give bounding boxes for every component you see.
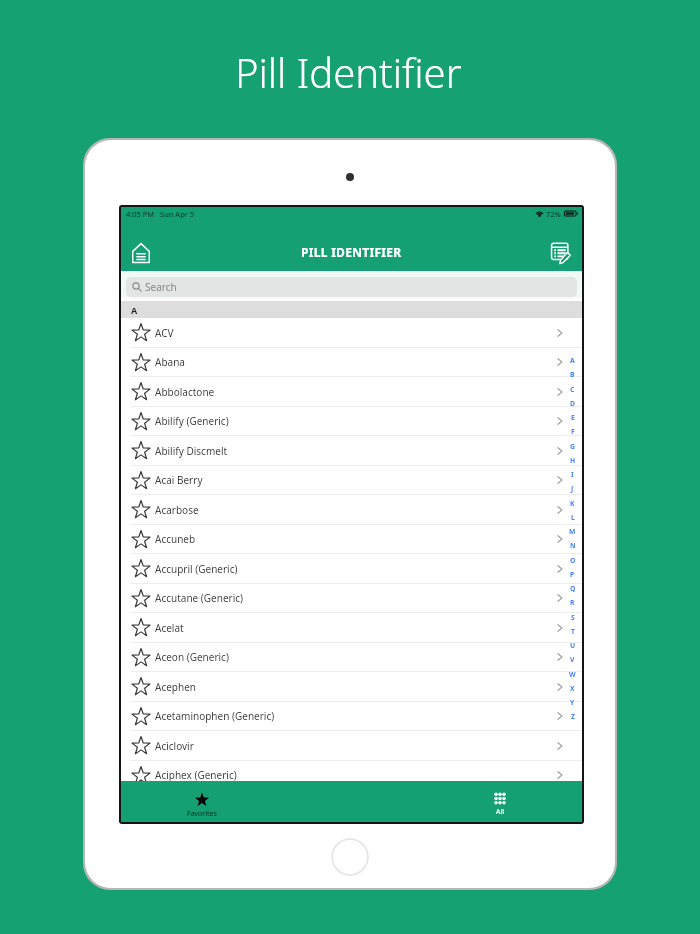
staticText: Acephen <box>155 680 196 694</box>
staticText: R <box>570 598 575 607</box>
staticText: T <box>571 627 575 636</box>
button[interactable]: Acarbose <box>121 495 582 525</box>
staticText: ACV <box>155 326 174 340</box>
button[interactable]: Acetaminophen (Generic) <box>121 702 582 731</box>
staticText: F <box>571 427 575 436</box>
staticText: Acetaminophen (Generic) <box>155 709 275 723</box>
staticText: Abilify Discmelt <box>155 444 228 458</box>
staticText: E <box>571 413 575 422</box>
staticText: S <box>571 613 575 622</box>
staticText: Aceon (Generic) <box>155 650 229 664</box>
staticText: Q <box>570 584 576 593</box>
staticText: Acarbose <box>155 503 199 517</box>
staticText: Aciphex (Generic) <box>155 768 237 781</box>
button[interactable]: Home <box>123 235 158 270</box>
staticText: K <box>570 499 575 508</box>
staticText: C <box>570 385 575 394</box>
staticText: Accuneb <box>155 532 196 546</box>
staticText: N <box>570 541 576 550</box>
staticText: Favorites <box>187 809 217 819</box>
staticText: W <box>569 670 576 679</box>
staticText: D <box>570 399 575 408</box>
button[interactable]: Accutane (Generic) <box>121 584 582 613</box>
button[interactable]: ACV <box>121 318 582 348</box>
button[interactable]: Search <box>126 277 577 297</box>
staticText: J <box>571 484 574 493</box>
staticText: V <box>570 655 575 664</box>
staticText: L <box>571 513 575 522</box>
staticText: 72% <box>546 209 561 219</box>
button[interactable]: Notes <box>542 234 578 270</box>
button[interactable]: Acai Berry <box>121 466 582 495</box>
button[interactable]: Accuneb <box>121 525 582 554</box>
button[interactable]: Acelat <box>121 613 582 643</box>
button[interactable]: Favorites <box>172 781 232 822</box>
staticText: Abbolactone <box>155 385 215 399</box>
staticText: I <box>571 470 574 479</box>
button[interactable]: Abilify Discmelt <box>121 436 582 466</box>
button[interactable]: Accupril (Generic) <box>121 554 582 584</box>
staticText: Y <box>570 698 575 707</box>
staticText: Z <box>571 712 575 721</box>
staticText: PILL IDENTIFIER <box>301 244 402 260</box>
button[interactable]: Abbolactone <box>121 377 582 407</box>
staticText: 4:05 PM Sun Apr 5 <box>126 209 195 219</box>
staticText: Acai Berry <box>155 473 203 487</box>
staticText: Acelat <box>155 621 184 635</box>
staticText: Accupril (Generic) <box>155 562 238 576</box>
staticText: P <box>570 570 575 579</box>
staticText: Aciclovir <box>155 739 194 753</box>
staticText: Accutane (Generic) <box>155 591 244 605</box>
button[interactable]: All <box>470 781 530 822</box>
staticText: U <box>570 641 576 650</box>
button[interactable]: Aciphex (Generic) <box>121 761 582 781</box>
staticText: Search <box>145 280 177 294</box>
button[interactable]: Aciclovir <box>121 731 582 761</box>
staticText: A <box>131 304 138 316</box>
staticText: Pill Identifier <box>235 45 462 99</box>
staticText: B <box>570 370 575 379</box>
staticText: Abilify (Generic) <box>155 414 229 428</box>
staticText: G <box>570 442 575 451</box>
button[interactable]: Aceon (Generic) <box>121 643 582 672</box>
button[interactable]: Acephen <box>121 672 582 702</box>
staticText: Abana <box>155 355 185 369</box>
staticText: X <box>570 684 575 693</box>
button[interactable]: Abilify (Generic) <box>121 407 582 436</box>
staticText: A <box>570 356 575 365</box>
staticText: O <box>570 556 576 565</box>
staticText: All <box>496 807 505 817</box>
button[interactable]: Abana <box>121 348 582 377</box>
staticText: H <box>570 456 576 465</box>
staticText: M <box>569 527 576 536</box>
